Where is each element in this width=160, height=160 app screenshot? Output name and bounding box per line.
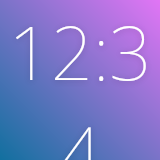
- button[interactable]: Watch face, 12:34: [0, 0, 160, 160]
- staticText: 12:34: [0, 1, 160, 160]
